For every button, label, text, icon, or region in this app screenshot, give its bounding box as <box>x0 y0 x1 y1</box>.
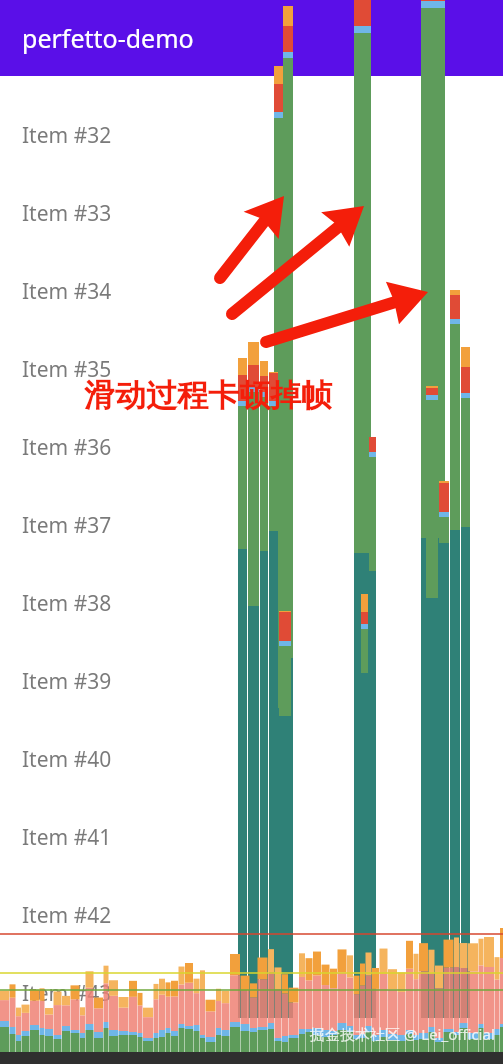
button[interactable]: Item #33 <box>0 174 503 252</box>
button[interactable]: Item #35 <box>0 330 503 408</box>
staticText: Item #35 <box>22 355 112 384</box>
button[interactable]: Item #42 <box>0 876 503 954</box>
staticText: Item #36 <box>22 433 112 462</box>
staticText: Item #40 <box>22 745 112 774</box>
staticText: Item #42 <box>22 901 112 930</box>
button[interactable]: Item #36 <box>0 408 503 486</box>
button[interactable]: Item #38 <box>0 564 503 642</box>
button[interactable]: Item #32 <box>0 96 503 174</box>
button[interactable]: perfetto-demo <box>0 0 503 76</box>
staticText: 掘金技术社区 @ Lei_official <box>310 1024 495 1044</box>
staticText: Item #39 <box>22 667 112 696</box>
button[interactable]: Item #39 <box>0 642 503 720</box>
staticText: Item #32 <box>22 121 112 150</box>
staticText: Item #38 <box>22 589 112 618</box>
button[interactable]: Item #37 <box>0 486 503 564</box>
staticText: Item #37 <box>22 511 112 540</box>
staticText: Item #33 <box>22 199 112 228</box>
staticText: Item #43 <box>22 979 112 1008</box>
staticText: 滑动过程卡顿掉帧 <box>84 376 332 415</box>
staticText: perfetto-demo <box>22 21 194 55</box>
button[interactable]: Item #34 <box>0 252 503 330</box>
staticText: Item #34 <box>22 277 112 306</box>
button[interactable]: Item #40 <box>0 720 503 798</box>
staticText: Item #41 <box>22 823 112 852</box>
button[interactable]: Item #41 <box>0 798 503 876</box>
button[interactable]: Item #43 <box>0 954 503 1032</box>
